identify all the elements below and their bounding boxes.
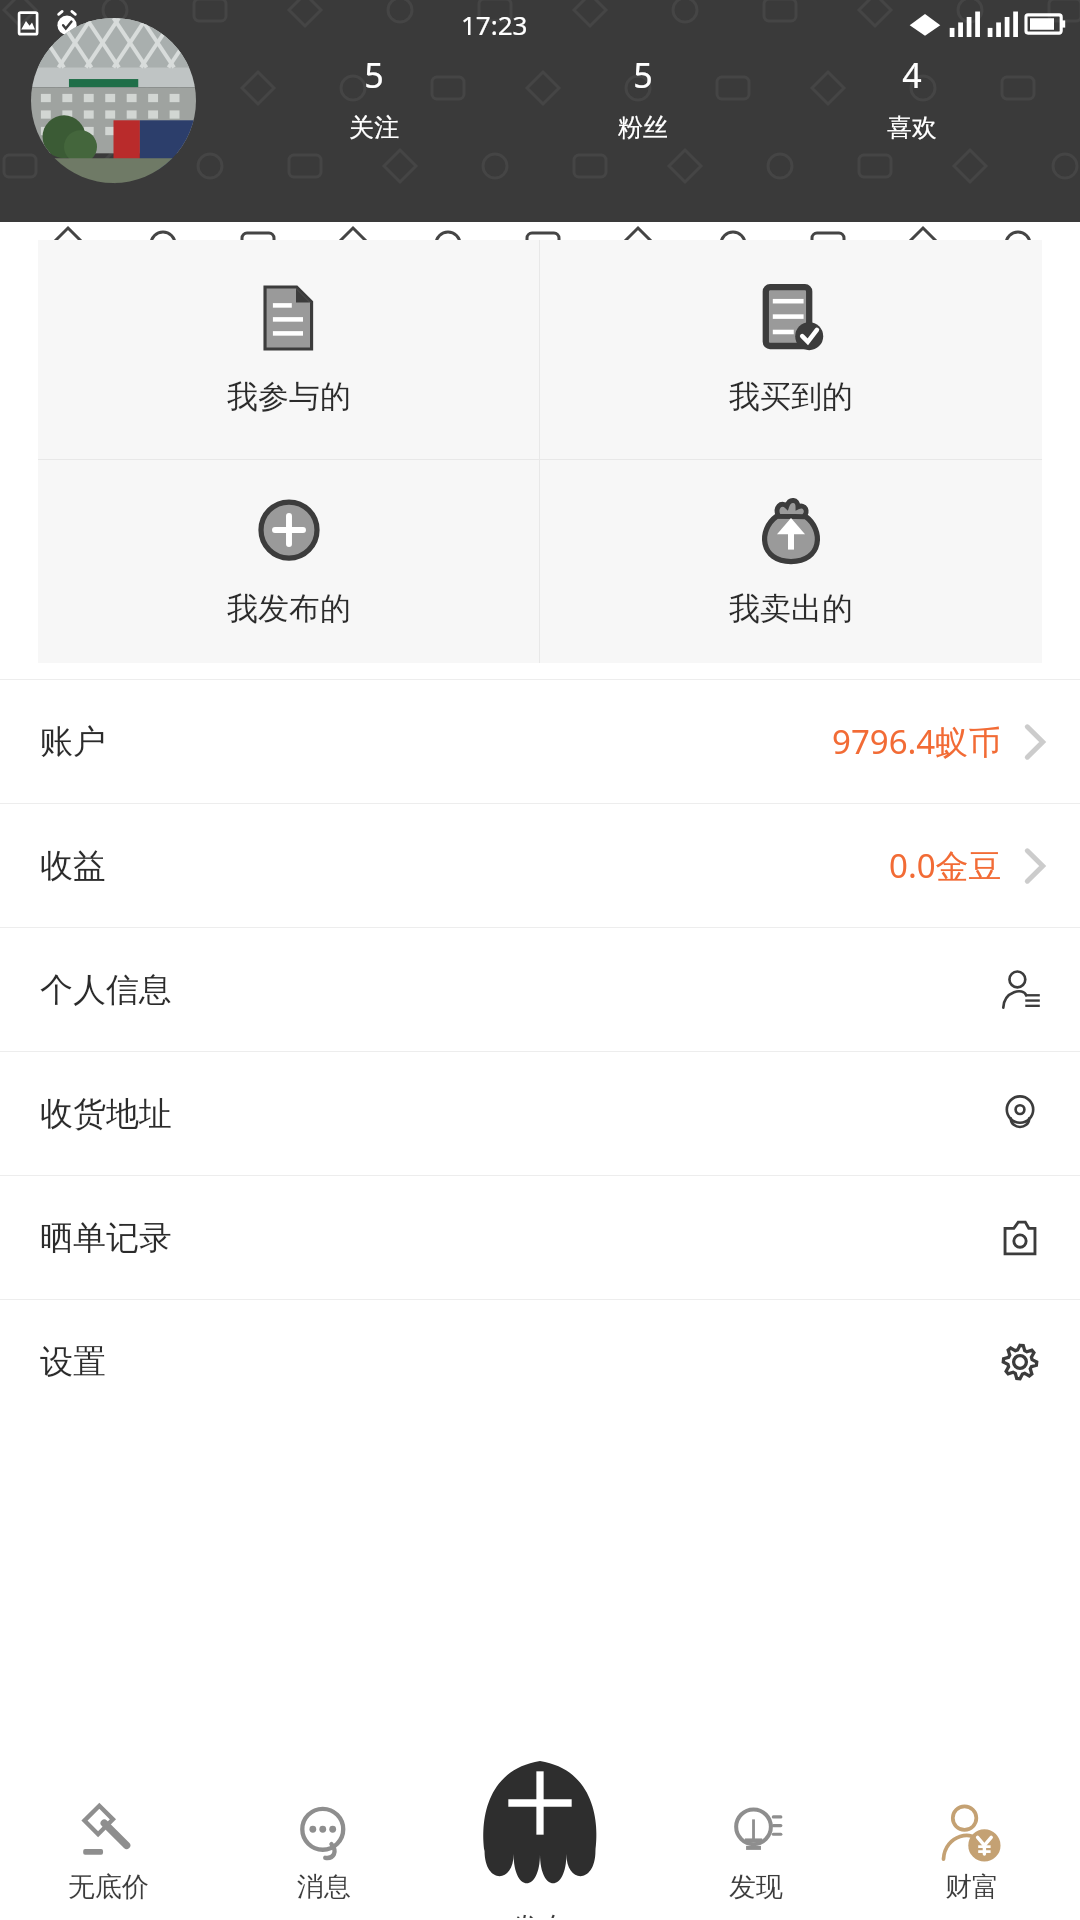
button[interactable]: 设置	[0, 1300, 1080, 1423]
staticText: 关注	[349, 112, 399, 143]
button[interactable]: 账户	[0, 680, 1080, 803]
staticText: 发布	[512, 1910, 568, 1918]
staticText: 消息	[297, 1870, 351, 1904]
button[interactable]: 个人信息	[0, 928, 1080, 1051]
button[interactable]: Profile photo	[31, 18, 196, 183]
button[interactable]: 我发布的	[38, 460, 539, 663]
staticText: 无底价	[68, 1870, 149, 1904]
staticText: 晒单记录	[40, 1217, 172, 1259]
staticText: 0.0金豆	[889, 843, 1002, 888]
staticText: 5	[364, 52, 384, 98]
button[interactable]: 发现	[648, 1760, 864, 1920]
button[interactable]: 消息	[216, 1760, 432, 1920]
staticText: 9796.4蚁币	[832, 719, 1002, 764]
staticText: 粉丝	[618, 112, 668, 143]
staticText: 5	[633, 52, 653, 98]
button[interactable]: 收益	[0, 804, 1080, 927]
button[interactable]: 4	[777, 48, 1046, 147]
staticText: 财富	[945, 1870, 999, 1904]
button[interactable]: 我参与的	[38, 240, 539, 459]
button[interactable]: 我卖出的	[540, 460, 1042, 663]
button[interactable]: 5	[508, 48, 777, 147]
staticText: 我发布的	[227, 589, 351, 628]
staticText: 账户	[40, 721, 106, 763]
staticText: 收益	[40, 845, 106, 887]
staticText: 喜欢	[887, 112, 937, 143]
staticText: 我买到的	[729, 377, 853, 416]
button[interactable]: 晒单记录	[0, 1176, 1080, 1299]
button[interactable]: 财富	[864, 1760, 1080, 1920]
button[interactable]: 我买到的	[540, 240, 1042, 459]
staticText: 我卖出的	[729, 589, 853, 628]
button[interactable]: 收货地址	[0, 1052, 1080, 1175]
button[interactable]: 5	[240, 48, 508, 147]
staticText: 个人信息	[40, 969, 172, 1011]
staticText: 设置	[40, 1341, 106, 1383]
button[interactable]: 发布	[474, 1758, 606, 1918]
staticText: 4	[902, 52, 922, 98]
staticText: 17:23	[461, 7, 528, 42]
staticText: 我参与的	[227, 377, 351, 416]
button[interactable]: 无底价	[0, 1760, 216, 1920]
staticText: 发现	[729, 1870, 783, 1904]
staticText: 收货地址	[40, 1093, 172, 1135]
